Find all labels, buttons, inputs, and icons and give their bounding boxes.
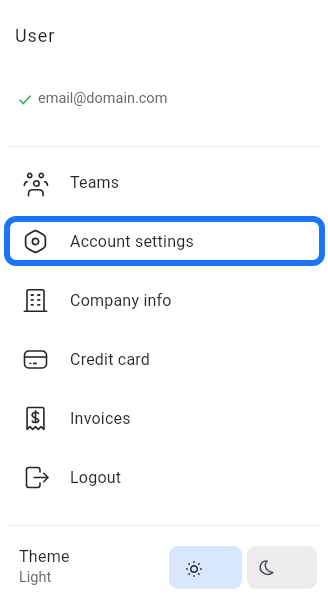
- staticText: Light: [19, 569, 52, 586]
- staticText: Theme: [19, 547, 70, 566]
- button[interactable]: Company info: [0, 271, 328, 330]
- staticText: Credit card: [70, 350, 151, 369]
- staticText: Account settings: [70, 232, 194, 251]
- staticText: Invoices: [70, 409, 131, 428]
- staticText: Logout: [70, 468, 122, 487]
- button[interactable]: Credit card: [0, 330, 328, 389]
- staticText: email@domain.com: [38, 90, 168, 107]
- staticText: User: [15, 25, 56, 46]
- button[interactable]: Light theme: [169, 546, 242, 589]
- button[interactable]: Invoices: [0, 389, 328, 448]
- staticText: Teams: [70, 173, 120, 192]
- staticText: Company info: [70, 291, 172, 310]
- button[interactable]: Logout: [0, 448, 328, 507]
- button[interactable]: Dark theme: [247, 546, 317, 589]
- button[interactable]: Teams: [0, 153, 328, 212]
- button[interactable]: Account settings: [0, 212, 328, 271]
